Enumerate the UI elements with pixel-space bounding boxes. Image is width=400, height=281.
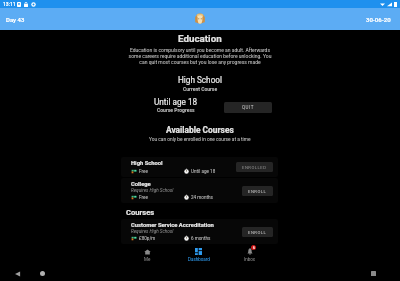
staticText: Until age 18 bbox=[154, 97, 198, 107]
staticText: High School bbox=[131, 160, 163, 167]
other: Recent apps bbox=[371, 271, 376, 276]
staticText: Course Progress bbox=[157, 107, 195, 113]
staticText: 13:11 bbox=[3, 1, 16, 7]
staticText: Education bbox=[178, 33, 222, 44]
staticText: Day 43 bbox=[6, 16, 25, 23]
staticText: 30-06-20 bbox=[366, 16, 391, 23]
staticText: Education is compulsory until you become… bbox=[124, 47, 276, 65]
button[interactable]: ENROLL bbox=[242, 186, 273, 196]
staticText: Requires High School bbox=[131, 188, 174, 193]
button[interactable]: ENROLL bbox=[242, 227, 273, 237]
staticText: Available Courses bbox=[166, 125, 234, 135]
button[interactable]: High School bbox=[121, 157, 278, 177]
staticText: QUIT bbox=[242, 105, 254, 110]
staticText: Free bbox=[139, 195, 148, 200]
staticText: Me bbox=[144, 257, 151, 262]
other: Back bbox=[15, 271, 21, 277]
staticText: Dashboard bbox=[188, 257, 210, 262]
staticText: ENROLLED bbox=[242, 165, 267, 170]
staticText: High School bbox=[178, 75, 222, 85]
staticText: Current Course bbox=[183, 86, 218, 92]
staticText: Customer Service Accreditation bbox=[131, 222, 214, 229]
button[interactable]: Customer Service Accreditation bbox=[121, 219, 278, 244]
other: Home bbox=[40, 271, 45, 276]
button[interactable]: College bbox=[121, 178, 278, 203]
staticText: Courses bbox=[126, 208, 155, 217]
staticText: Until age 18 bbox=[191, 169, 216, 174]
staticText: £80p/m bbox=[139, 236, 156, 241]
staticText: Inbox bbox=[244, 257, 255, 262]
button[interactable]: Profile bbox=[192, 11, 208, 27]
button[interactable]: QUIT bbox=[224, 102, 272, 113]
staticText: 6 bbox=[253, 246, 255, 250]
staticText: 24 months bbox=[191, 195, 213, 200]
staticText: College bbox=[131, 181, 151, 188]
button[interactable]: Dashboard bbox=[173, 244, 224, 266]
staticText: 6 months bbox=[191, 236, 211, 241]
staticText: You can only be enrolled in one course a… bbox=[149, 137, 251, 143]
button[interactable]: 6 bbox=[224, 244, 275, 266]
staticText: Requires High School bbox=[131, 229, 174, 234]
button[interactable]: Me bbox=[122, 244, 173, 266]
staticText: ENROLL bbox=[248, 189, 267, 194]
staticText: ENROLL bbox=[248, 230, 267, 235]
staticText: Free bbox=[139, 169, 148, 174]
button[interactable]: ENROLLED bbox=[236, 162, 273, 172]
